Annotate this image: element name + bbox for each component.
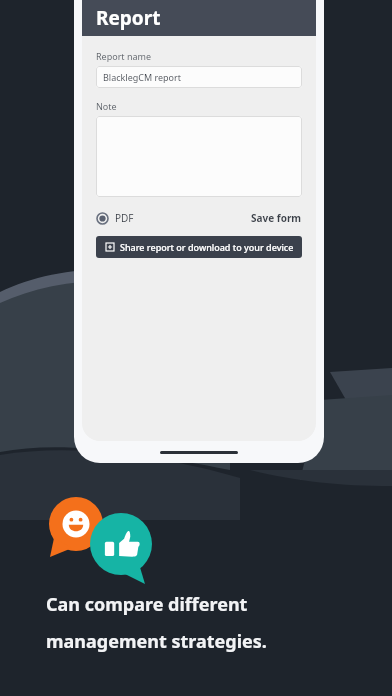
staticText: PDF: [115, 211, 134, 225]
staticText: management strategies.: [46, 629, 267, 654]
staticText: BlacklegCM report: [103, 71, 182, 83]
button[interactable]: PDF: [96, 211, 134, 225]
staticText: Save form: [251, 211, 302, 225]
staticText: Report name: [96, 50, 152, 62]
button[interactable]: [96, 116, 302, 197]
button[interactable]: Share report or download to your device: [96, 236, 302, 258]
staticText: Can compare different: [46, 592, 248, 617]
staticText: Report: [96, 5, 161, 31]
staticText: Note: [96, 100, 117, 112]
button[interactable]: BlacklegCM report: [96, 66, 302, 88]
button[interactable]: Save form: [251, 211, 302, 225]
staticText: Share report or download to your device: [120, 241, 294, 253]
